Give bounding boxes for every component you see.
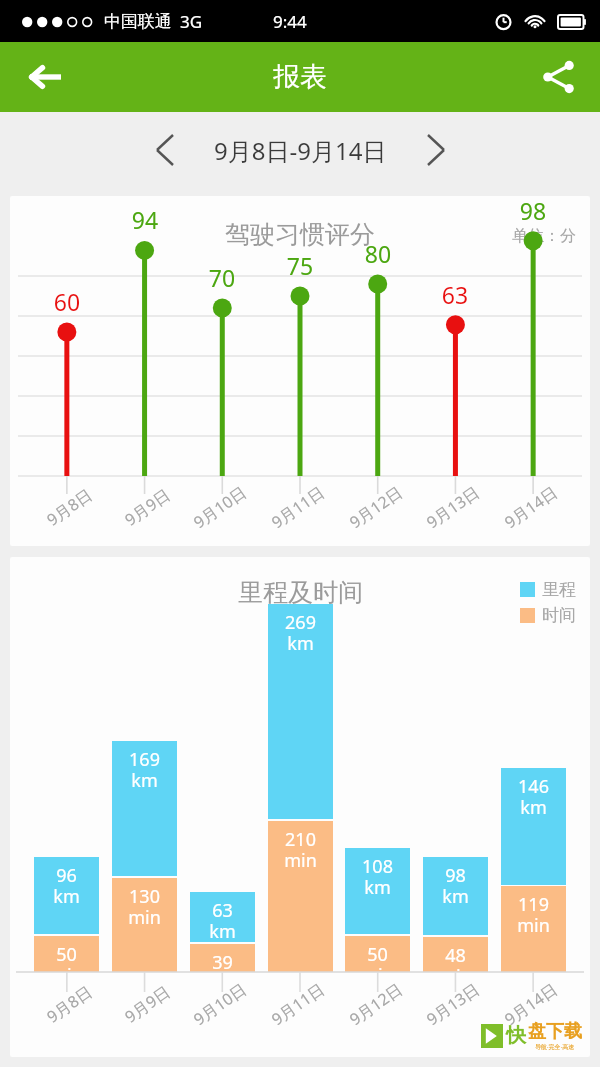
staticText: 9月9日 xyxy=(120,980,175,1028)
staticText: 9月9日 xyxy=(120,483,175,531)
staticText: 9月10日 xyxy=(189,481,251,533)
button[interactable]: Next week xyxy=(409,123,463,177)
staticText: 119 min xyxy=(517,892,550,937)
staticText: 130 min xyxy=(128,884,161,929)
staticText: 9月14日 xyxy=(500,978,562,1030)
staticText: 9月11日 xyxy=(267,978,329,1030)
staticText: 9:44 xyxy=(273,10,307,33)
staticText: 50 min xyxy=(50,942,83,972)
staticText: 96 km xyxy=(53,863,80,908)
staticText: 9月8日 xyxy=(42,980,97,1028)
staticText: 9月8日-9月14日 xyxy=(214,134,387,167)
staticText: 70 xyxy=(202,262,242,293)
button[interactable]: 驾驶习惯评分 xyxy=(10,196,590,546)
staticText: 210 min xyxy=(284,827,317,872)
staticText: 中国联通 xyxy=(104,11,172,32)
staticText: 里程及时间 xyxy=(238,577,363,608)
button[interactable]: Share xyxy=(530,48,588,106)
staticText: 63 km xyxy=(209,898,236,942)
staticText: 39 min xyxy=(206,950,239,972)
staticText: 时间 xyxy=(542,605,576,626)
staticText: 75 xyxy=(280,250,320,281)
staticText: 146 km xyxy=(518,774,549,819)
staticText: 80 xyxy=(358,238,398,269)
staticText: 9月14日 xyxy=(500,481,562,533)
button[interactable]: Back xyxy=(10,47,70,107)
staticText: 269 km xyxy=(285,610,316,655)
staticText: 9月13日 xyxy=(422,978,484,1030)
staticText: 9月13日 xyxy=(422,481,484,533)
staticText: 108 km xyxy=(362,854,393,899)
staticText: 94 xyxy=(125,204,165,235)
button[interactable]: Previous week xyxy=(138,123,192,177)
staticText: 98 xyxy=(513,196,553,226)
staticText: 9月11日 xyxy=(267,481,329,533)
staticText: 60 xyxy=(47,286,87,317)
staticText: 9月12日 xyxy=(345,978,407,1030)
staticText: 98 km xyxy=(442,863,469,908)
staticText: 单位：分 xyxy=(512,226,576,246)
staticText: 9月12日 xyxy=(345,481,407,533)
staticText: 导航·完全·高速 xyxy=(535,1043,575,1051)
staticText: 里程 xyxy=(542,579,576,600)
staticText: 63 xyxy=(435,279,475,310)
staticText: 169 km xyxy=(129,747,160,792)
staticText: 3G xyxy=(180,10,203,33)
staticText: 快 xyxy=(506,1023,526,1048)
staticText: 50 min xyxy=(361,942,394,972)
staticText: 报表 xyxy=(273,60,327,94)
staticText: 盘下载 xyxy=(528,1020,582,1043)
staticText: 9月10日 xyxy=(189,978,251,1030)
staticText: 9月8日 xyxy=(42,483,97,531)
staticText: 48 min xyxy=(439,943,472,972)
staticText: 驾驶习惯评分 xyxy=(225,219,375,250)
button[interactable]: 里程及时间 xyxy=(10,557,590,1057)
